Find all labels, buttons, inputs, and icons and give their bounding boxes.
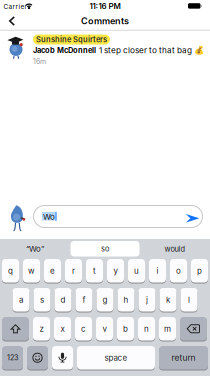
staticText: 123 xyxy=(7,353,18,362)
staticText: c xyxy=(81,324,86,333)
button[interactable]: Send xyxy=(184,210,201,227)
button[interactable]: Shift xyxy=(2,317,29,340)
button[interactable]: “Wo” xyxy=(2,239,68,259)
staticText: h xyxy=(123,295,128,304)
button[interactable]: e xyxy=(44,259,61,282)
button[interactable]: k xyxy=(159,288,176,311)
staticText: Comments xyxy=(81,16,129,26)
button[interactable]: p xyxy=(191,259,208,282)
button[interactable]: v xyxy=(96,317,113,340)
button[interactable]: h xyxy=(117,288,134,311)
staticText: Jacob McDonnell xyxy=(33,46,96,55)
button[interactable]: n xyxy=(138,317,155,340)
staticText: n xyxy=(144,324,149,333)
staticText: 1 step closer to that bag 💰 xyxy=(99,45,204,55)
staticText: m xyxy=(164,324,171,333)
staticText: Wo xyxy=(43,212,55,222)
staticText: p xyxy=(197,266,202,275)
staticText: y xyxy=(113,266,117,275)
button[interactable]: i xyxy=(149,259,166,282)
staticText: g xyxy=(102,295,107,304)
staticText: i xyxy=(156,266,158,275)
staticText: Carrier xyxy=(3,3,26,10)
staticText: u xyxy=(134,266,139,275)
button[interactable]: q xyxy=(2,259,19,282)
button[interactable]: u xyxy=(128,259,145,282)
button[interactable]: y xyxy=(107,259,124,282)
staticText: space xyxy=(104,353,127,362)
staticText: s xyxy=(40,295,44,304)
button[interactable]: b xyxy=(117,317,134,340)
staticText: so xyxy=(101,244,109,253)
button[interactable]: o xyxy=(170,259,187,282)
button[interactable]: d xyxy=(54,288,71,311)
staticText: r xyxy=(72,266,75,275)
button[interactable]: w xyxy=(23,259,40,282)
staticText: w xyxy=(28,266,35,275)
staticText: z xyxy=(39,324,43,333)
button[interactable]: t xyxy=(86,259,103,282)
button[interactable]: space xyxy=(77,346,155,369)
staticText: x xyxy=(60,324,64,333)
staticText: a xyxy=(19,295,23,304)
button[interactable]: Back xyxy=(2,12,22,30)
staticText: b xyxy=(123,324,128,333)
button[interactable]: c xyxy=(75,317,92,340)
staticText: 16m xyxy=(33,57,46,66)
staticText: Sunshine Squirters xyxy=(36,35,107,44)
button[interactable]: would xyxy=(142,239,208,259)
button[interactable]: g xyxy=(96,288,113,311)
staticText: j xyxy=(146,295,148,304)
staticText: d xyxy=(60,295,65,304)
staticText: v xyxy=(102,324,106,333)
button[interactable]: l xyxy=(180,288,197,311)
staticText: k xyxy=(166,295,170,304)
button[interactable]: Sunshine Squirters xyxy=(33,34,110,44)
staticText: f xyxy=(82,295,85,304)
button[interactable]: return xyxy=(159,346,208,369)
button[interactable]: m xyxy=(159,317,176,340)
button[interactable]: a xyxy=(12,288,29,311)
staticText: l xyxy=(188,295,190,304)
button[interactable]: Delete xyxy=(180,317,207,340)
staticText: o xyxy=(176,266,181,275)
button[interactable]: so xyxy=(70,241,139,256)
button[interactable]: r xyxy=(65,259,82,282)
staticText: 11:16 PM xyxy=(89,1,120,11)
button[interactable]: j xyxy=(138,288,155,311)
button[interactable]: Comment text field xyxy=(33,205,203,228)
button[interactable]: 123 xyxy=(2,346,23,369)
button[interactable]: z xyxy=(33,317,50,340)
button[interactable]: x xyxy=(54,317,71,340)
button[interactable]: Dictate xyxy=(52,346,73,369)
staticText: “Wo” xyxy=(26,244,44,254)
staticText: return xyxy=(171,353,195,363)
staticText: e xyxy=(50,266,55,275)
staticText: q xyxy=(8,266,13,275)
button[interactable]: Emoji xyxy=(27,346,48,369)
staticText: t xyxy=(93,266,96,275)
button[interactable]: f xyxy=(75,288,92,311)
staticText: would xyxy=(164,245,185,253)
button[interactable]: s xyxy=(33,288,50,311)
